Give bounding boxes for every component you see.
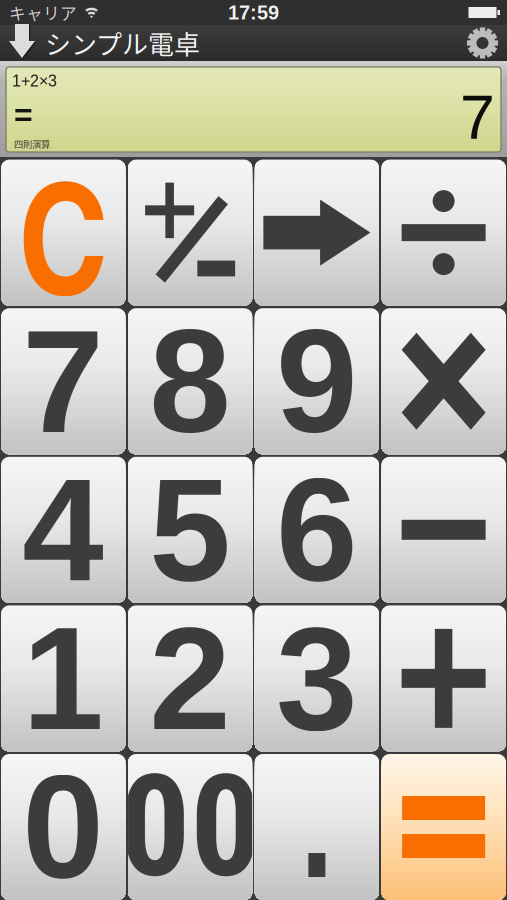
- button[interactable]: 7: [1, 308, 125, 454]
- staticText: 3: [276, 596, 358, 760]
- button[interactable]: 0: [1, 754, 125, 900]
- staticText: 6: [276, 448, 358, 612]
- button[interactable]: 6: [255, 457, 379, 603]
- staticText: 17:59: [228, 1, 279, 24]
- button[interactable]: Minus: [381, 457, 506, 603]
- staticText: 4: [22, 448, 104, 612]
- button[interactable]: Double zero: [128, 754, 252, 900]
- button[interactable]: Clear: [1, 160, 125, 306]
- staticText: キャリア: [9, 0, 77, 24]
- staticText: C: [18, 125, 108, 340]
- button[interactable]: Divide: [381, 160, 506, 306]
- staticText: 00: [119, 744, 261, 900]
- button[interactable]: Backspace: [255, 160, 379, 306]
- staticText: 2: [149, 596, 231, 760]
- button[interactable]: Plus minus: [128, 160, 252, 306]
- button[interactable]: 8: [128, 308, 252, 454]
- staticText: 7: [22, 299, 104, 463]
- staticText: =: [14, 97, 33, 133]
- button[interactable]: 1: [1, 605, 125, 751]
- staticText: 四則演算: [14, 137, 50, 150]
- button[interactable]: Multiply: [381, 308, 506, 454]
- button[interactable]: 2: [128, 605, 252, 751]
- staticText: 5: [149, 448, 231, 612]
- staticText: 8: [149, 299, 231, 463]
- button[interactable]: 5: [128, 457, 252, 603]
- button[interactable]: Minimise: [9, 25, 37, 61]
- button[interactable]: Decimal point: [255, 754, 379, 900]
- button[interactable]: Equals: [381, 754, 506, 900]
- button[interactable]: Settings: [467, 27, 498, 58]
- staticText: 7: [460, 82, 495, 152]
- button[interactable]: 9: [255, 308, 379, 454]
- staticText: 9: [276, 299, 358, 463]
- button[interactable]: 4: [1, 457, 125, 603]
- staticText: シンプル電卓: [45, 24, 200, 62]
- button[interactable]: 3: [255, 605, 379, 751]
- staticText: 0: [22, 745, 104, 900]
- button[interactable]: Plus: [381, 605, 506, 751]
- staticText: 1: [22, 596, 104, 760]
- staticText: 1+2×3: [12, 72, 57, 90]
